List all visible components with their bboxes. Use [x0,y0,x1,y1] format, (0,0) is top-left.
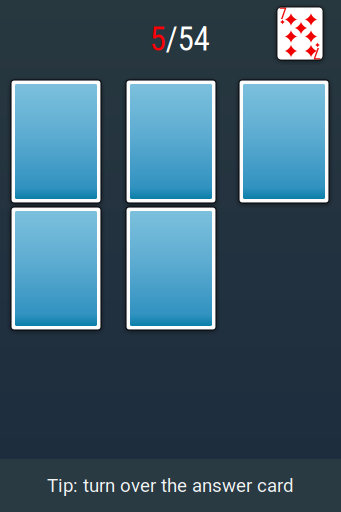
button[interactable]: Card 1 [11,80,101,203]
staticText: 7 [313,44,321,62]
staticText: Tip: turn over the answer card [47,475,294,496]
button[interactable]: Card 5 [126,207,216,330]
button[interactable]: Card 2 [126,80,216,203]
staticText: /54 [165,19,209,59]
button[interactable]: Card 4 [11,207,101,330]
button[interactable]: Answer card, seven of diamonds [277,7,323,60]
staticText: 5 [149,19,165,59]
button[interactable]: Card 3 [239,80,329,203]
staticText: 7 [279,5,287,23]
